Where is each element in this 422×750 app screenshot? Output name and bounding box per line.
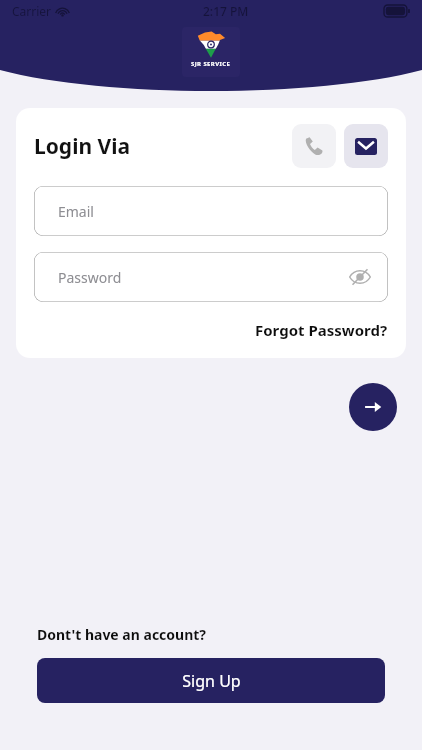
staticText: Sign Up (182, 670, 241, 692)
button[interactable]: Login via email (344, 124, 388, 168)
staticText: SJR SERVICE (191, 60, 231, 68)
staticText: Forgot Password? (255, 320, 388, 340)
button[interactable]: Password (34, 252, 388, 302)
button[interactable]: Email (34, 186, 388, 236)
staticText: Password (58, 268, 122, 287)
button[interactable]: Show password (346, 263, 374, 291)
staticText: Dont't have an account? (37, 625, 207, 644)
staticText: Login Via (34, 132, 131, 161)
staticText: 2:17 PM (203, 3, 249, 19)
button[interactable]: Login via phone (292, 124, 336, 168)
button[interactable]: Continue (349, 383, 397, 431)
staticText: Carrier (12, 3, 52, 19)
button[interactable]: Forgot Password? (255, 318, 388, 342)
staticText: Email (58, 202, 94, 221)
button[interactable]: Sign Up (37, 658, 385, 703)
